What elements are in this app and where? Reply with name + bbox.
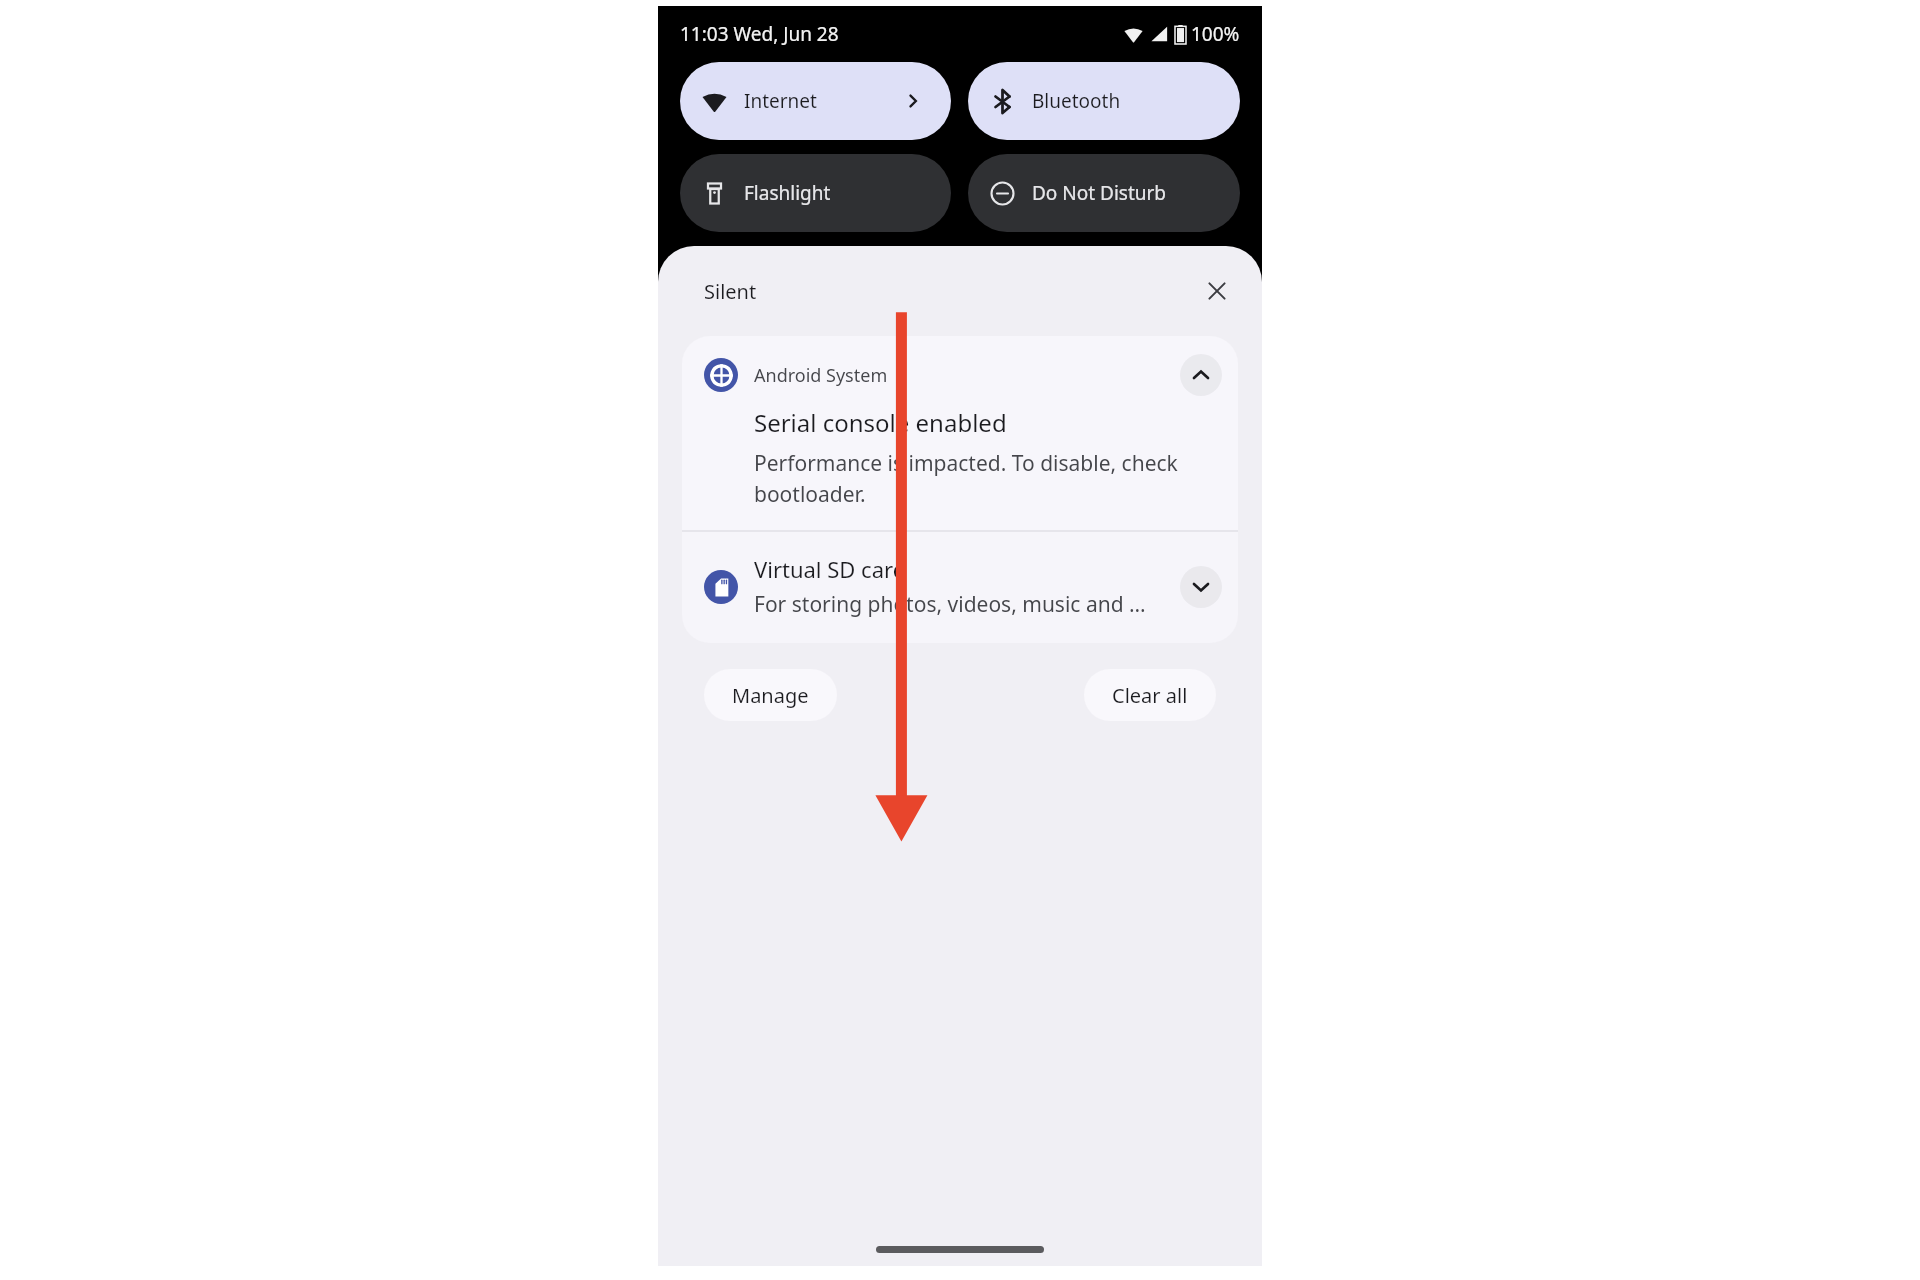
button[interactable]: Bluetooth bbox=[968, 62, 1240, 140]
staticText: Clear all bbox=[1112, 682, 1188, 709]
staticText: Internet bbox=[744, 88, 817, 114]
staticText: Do Not Disturb bbox=[1032, 180, 1167, 206]
button[interactable]: Virtual SD card bbox=[682, 532, 1238, 643]
staticText: Silent bbox=[704, 278, 757, 305]
staticText: Bluetooth bbox=[1032, 88, 1121, 114]
staticText: 11:03 Wed, Jun 28 bbox=[680, 21, 839, 47]
button[interactable]: Expand notification bbox=[1180, 566, 1222, 608]
staticText: Flashlight bbox=[744, 180, 831, 206]
staticText: Virtual SD card bbox=[754, 554, 907, 584]
button[interactable]: Clear all bbox=[1084, 669, 1216, 721]
staticText: Android System bbox=[754, 363, 888, 388]
staticText: For storing photos, videos, music and … bbox=[754, 590, 1146, 619]
button[interactable]: Internet bbox=[680, 62, 951, 140]
button[interactable]: Manage bbox=[704, 669, 837, 721]
staticText: Performance is impacted. To disable, che… bbox=[754, 449, 1186, 508]
button[interactable]: Android System bbox=[682, 336, 1238, 530]
button[interactable]: Do Not Disturb bbox=[968, 154, 1240, 232]
button[interactable]: Collapse notification bbox=[1180, 354, 1222, 396]
staticText: 100% bbox=[1191, 21, 1240, 47]
staticText: Manage bbox=[732, 682, 809, 709]
button[interactable]: Close notifications bbox=[1196, 270, 1238, 312]
button[interactable]: Flashlight bbox=[680, 154, 951, 232]
staticText: Serial console enabled bbox=[754, 406, 1007, 439]
